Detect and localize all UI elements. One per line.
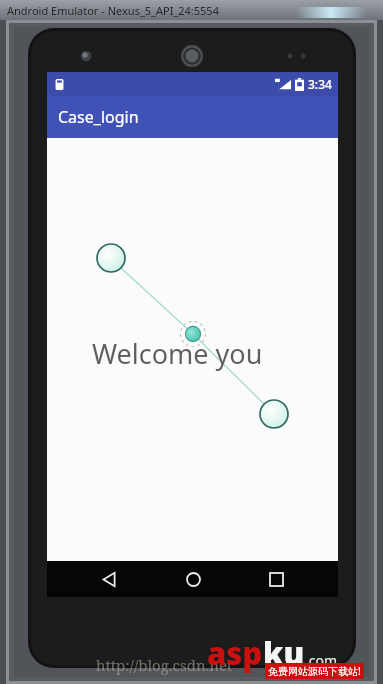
staticText: 3:34	[308, 76, 332, 92]
staticText: .com	[305, 651, 338, 670]
button[interactable]: Case_login	[47, 96, 338, 138]
staticText: Case_login	[58, 106, 139, 128]
button[interactable]: Home	[171, 561, 215, 597]
staticText: Android Emulator - Nexus_5_API_24:5554	[7, 3, 219, 18]
staticText: ku	[263, 632, 305, 674]
staticText: Welcome you	[92, 335, 263, 372]
staticText: http://blog.csdn.net	[96, 655, 233, 675]
button[interactable]: Recent apps	[254, 561, 298, 597]
staticText: asp	[207, 632, 263, 674]
button[interactable]: Back	[87, 561, 131, 597]
staticText: 免费网站源码下载站!	[268, 664, 361, 678]
